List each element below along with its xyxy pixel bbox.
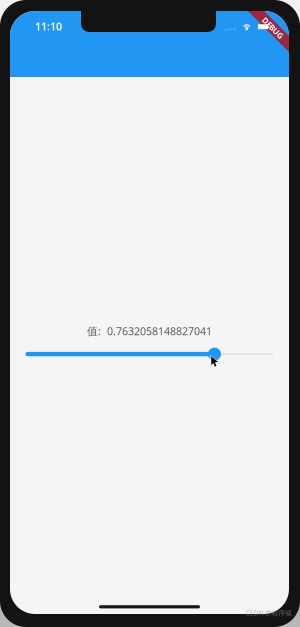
button[interactable]: Value slider	[25, 346, 273, 362]
staticText: CSDN @程序猿	[245, 609, 292, 617]
staticText: 值: 0.7632058148827041	[87, 324, 212, 338]
staticText: 11:10	[35, 19, 62, 33]
staticText: DEBUG	[259, 23, 286, 33]
